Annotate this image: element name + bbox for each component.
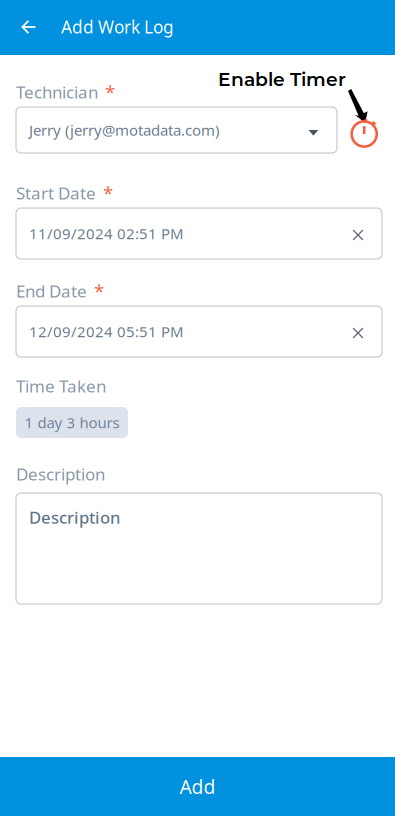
staticText: Description <box>16 462 105 486</box>
staticText: Technician <box>16 80 98 104</box>
button[interactable]: Back <box>8 6 50 48</box>
staticText: 1 day 3 hours <box>24 412 119 433</box>
staticText: Add <box>179 773 215 800</box>
staticText: * <box>105 79 115 105</box>
staticText: * <box>103 180 113 206</box>
staticText: Description <box>29 506 120 529</box>
button[interactable]: Enable Timer <box>344 111 384 157</box>
button[interactable]: Add <box>0 757 395 816</box>
staticText: Jerry (jerry@motadata.com) <box>29 120 219 140</box>
staticText: End Date <box>16 279 87 303</box>
staticText: Add Work Log <box>61 15 174 38</box>
staticText: Enable Timer <box>218 68 346 91</box>
staticText: Start Date <box>16 181 96 205</box>
staticText: 12/09/2024 05:51 PM <box>29 321 184 342</box>
staticText: 11/09/2024 02:51 PM <box>29 223 184 244</box>
staticText: * <box>94 278 104 304</box>
staticText: Time Taken <box>16 374 106 398</box>
